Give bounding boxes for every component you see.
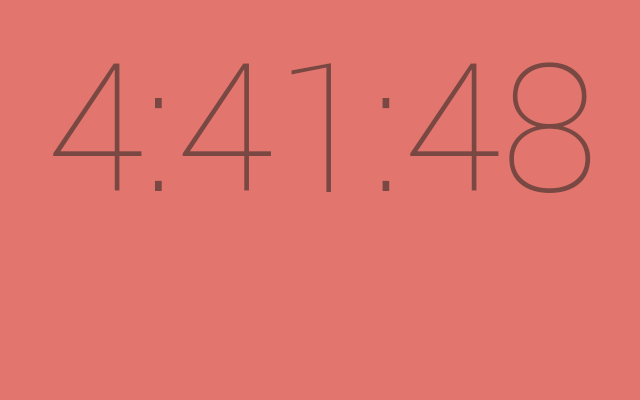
- staticText: 4:41:48: [46, 5, 599, 262]
